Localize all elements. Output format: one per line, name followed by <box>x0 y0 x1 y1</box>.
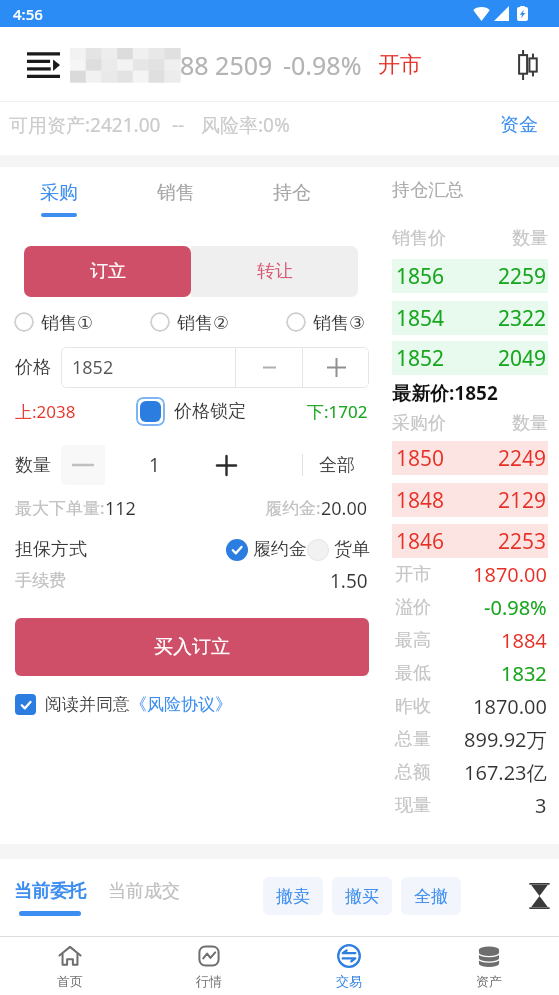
staticText: 2253 <box>471 527 546 556</box>
button[interactable]: 销售③ <box>286 312 366 332</box>
button[interactable]: Increase price <box>303 347 369 388</box>
button[interactable]: 交易 <box>279 937 419 995</box>
staticText: 货单 <box>334 538 370 561</box>
staticText: 价格锁定 <box>174 400 246 423</box>
staticText: 可用资产:2421.00 <box>9 112 161 138</box>
staticText: 总额 <box>395 761 431 784</box>
staticText: 112 <box>105 496 136 518</box>
staticText: 采购价 <box>392 412 470 435</box>
staticText: 销售② <box>177 312 230 332</box>
staticText: 开市 <box>395 563 431 586</box>
staticText: 阅读并同意 <box>45 694 130 715</box>
button[interactable]: 转让 <box>191 246 358 297</box>
staticText: 当前委托 <box>14 880 86 903</box>
button[interactable]: 买入订立 <box>15 618 369 676</box>
staticText: 最大下单量: <box>15 496 105 518</box>
staticText: 1852 <box>396 344 471 373</box>
staticText: 2322 <box>471 304 546 333</box>
staticText: 1870.00 <box>473 561 547 588</box>
button[interactable]: 当前成交 <box>108 880 180 903</box>
button[interactable]: 订立 <box>24 246 191 297</box>
button[interactable]: 行情 <box>139 937 279 995</box>
staticText: 担保方式 <box>15 538 87 561</box>
staticText: 溢价 <box>395 596 431 619</box>
staticText: 《风险协议》 <box>130 694 232 715</box>
staticText: 2249 <box>471 444 546 473</box>
button[interactable]: Menu <box>27 44 60 86</box>
staticText: 167.23亿 <box>464 759 547 786</box>
staticText: 1 <box>149 452 160 478</box>
staticText: 当前成交 <box>108 880 180 903</box>
button[interactable]: 撤买 <box>332 877 392 915</box>
button[interactable]: 首页 <box>0 937 139 995</box>
staticText: 下:1702 <box>307 400 368 423</box>
staticText: 销售 <box>157 181 195 205</box>
staticText: 买入订立 <box>154 635 230 659</box>
staticText: 全部 <box>319 454 355 477</box>
staticText: 2129 <box>471 486 546 515</box>
staticText: 销售① <box>41 312 94 332</box>
staticText: 价格 <box>15 356 51 379</box>
button[interactable]: 持仓 <box>234 167 350 222</box>
staticText: 昨收 <box>395 695 431 718</box>
staticText: 开市 <box>378 51 422 79</box>
staticText: 最低 <box>395 662 431 685</box>
staticText: 数量 <box>470 412 548 435</box>
staticText: 3 <box>535 792 547 819</box>
button[interactable]: 全部 <box>319 448 355 483</box>
button[interactable]: 销售① <box>14 312 150 332</box>
button[interactable]: Decrease quantity <box>61 445 105 485</box>
staticText: 1852 <box>72 355 114 380</box>
button[interactable]: 全撤 <box>401 877 461 915</box>
staticText: 20.00 <box>321 496 368 518</box>
staticText: -0.98% <box>283 48 362 82</box>
staticText: 撤买 <box>345 886 379 907</box>
staticText: 全撤 <box>414 886 448 907</box>
staticText: 行情 <box>196 973 222 989</box>
staticText: 履约金 <box>253 538 307 561</box>
staticText: 1832 <box>501 660 547 687</box>
button[interactable]: 资产 <box>419 937 559 995</box>
button[interactable]: 销售 <box>118 167 234 222</box>
staticText: 持仓 <box>273 181 311 205</box>
button[interactable]: 阅读并同意 <box>15 694 232 715</box>
staticText: 1884 <box>501 627 547 654</box>
staticText: 交易 <box>336 973 362 989</box>
staticText: 现量 <box>395 794 431 817</box>
button[interactable]: 资金 <box>498 108 540 142</box>
staticText: 手续费 <box>15 570 66 591</box>
button[interactable]: 销售② <box>150 312 286 332</box>
staticText: 2049 <box>471 344 546 373</box>
staticText: 持仓汇总 <box>392 179 464 202</box>
staticText: 风险率:0% <box>201 112 290 138</box>
staticText: 履约金: <box>265 496 321 518</box>
staticText: 4:56 <box>13 4 43 24</box>
button[interactable]: History <box>526 881 552 911</box>
button[interactable]: Increase quantity <box>204 445 248 485</box>
button[interactable]: 价格锁定 <box>136 397 246 426</box>
staticText: 订立 <box>90 260 126 283</box>
staticText: 首页 <box>57 973 83 989</box>
staticText: 数量 <box>470 227 548 250</box>
staticText: 最新价:1852 <box>392 380 498 406</box>
staticText: 1850 <box>396 444 471 473</box>
button[interactable]: 撤卖 <box>263 877 323 915</box>
staticText: 资产 <box>476 973 502 989</box>
button[interactable]: K line chart <box>512 44 542 86</box>
button[interactable]: Decrease price <box>236 347 302 388</box>
staticText: 1870.00 <box>473 693 547 720</box>
staticText: -- <box>172 112 185 138</box>
button[interactable]: 采购 <box>0 167 118 222</box>
staticText: 销售③ <box>313 312 366 332</box>
staticText: 1854 <box>396 304 471 333</box>
staticText: -0.98% <box>484 594 547 621</box>
staticText: 2259 <box>471 262 546 291</box>
staticText: 资金 <box>500 113 538 137</box>
button[interactable]: 货单 <box>307 538 370 561</box>
staticText: 899.92万 <box>464 726 547 753</box>
staticText: 上:2038 <box>15 400 76 423</box>
button[interactable]: 履约金 <box>226 538 307 561</box>
staticText: 1848 <box>396 486 471 515</box>
button[interactable]: 当前委托 <box>14 880 86 916</box>
staticText: 1.50 <box>330 568 368 592</box>
